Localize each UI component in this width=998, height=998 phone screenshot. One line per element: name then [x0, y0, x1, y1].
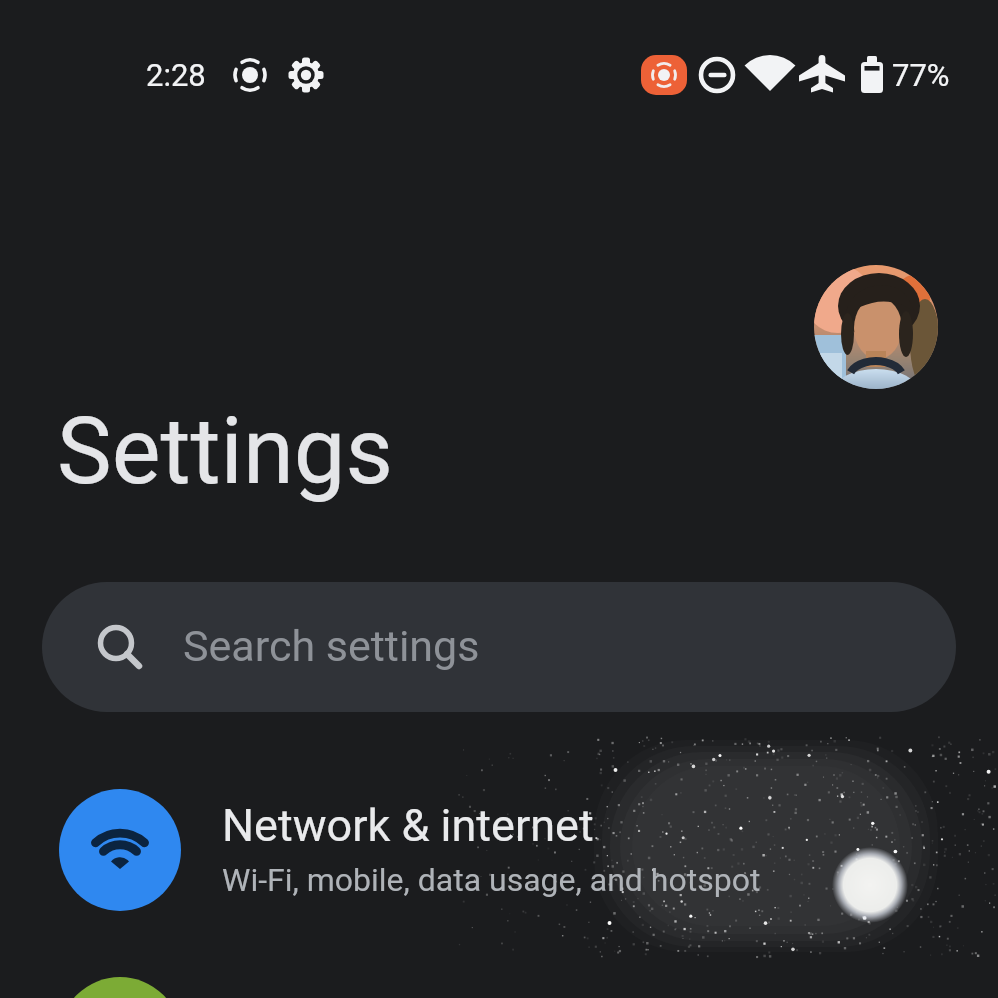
staticText: Search settings [183, 621, 480, 671]
staticText: Settings [57, 398, 393, 506]
button[interactable] [814, 265, 938, 389]
button[interactable] [42, 582, 956, 712]
button[interactable] [0, 780, 998, 920]
staticText: 77% [892, 57, 950, 93]
staticText: Wi-Fi, mobile, data usage, and hotspot [222, 861, 761, 899]
staticText: Network & internet [222, 799, 594, 852]
button[interactable] [0, 968, 998, 998]
staticText: 2:28 [146, 57, 206, 93]
